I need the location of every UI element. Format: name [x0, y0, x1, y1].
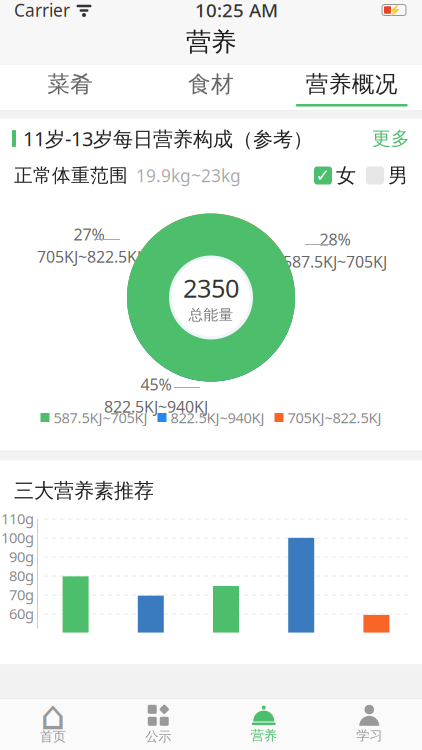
staticText: ⌂ — [40, 693, 65, 738]
staticText: 10:25 AM — [195, 0, 278, 22]
staticText: 80g — [9, 566, 34, 585]
staticText: 男 — [388, 163, 408, 188]
staticText: 19.9kg~23kg — [136, 164, 241, 187]
button[interactable]: 食材 — [141, 64, 281, 110]
staticText: Carrier — [14, 0, 70, 21]
staticText: 食材 — [188, 70, 234, 98]
button[interactable]: 学习 — [316, 698, 422, 750]
staticText: 28% — [319, 229, 350, 250]
button[interactable]: 更多 — [372, 127, 410, 150]
button[interactable]: 男 — [356, 163, 408, 188]
staticText: 营养 — [186, 26, 236, 57]
button[interactable]: 营养概况 — [281, 64, 422, 110]
staticText: 822.5KJ~940KJ — [104, 396, 208, 417]
staticText: 110g — [1, 509, 34, 528]
staticText: 45% — [140, 374, 171, 395]
staticText: 更多 — [372, 127, 410, 150]
staticText: 705KJ~822.5KJ — [37, 246, 141, 267]
button[interactable]: 公示 — [105, 698, 211, 750]
staticText: 公示 — [145, 728, 171, 745]
staticText: 70g — [9, 585, 34, 604]
staticText: 女 — [336, 163, 356, 188]
staticText: 705KJ~822.5KJ — [287, 408, 381, 427]
staticText: 11岁-13岁每日营养构成（参考） — [23, 125, 313, 152]
staticText: 三大营养素推荐 — [14, 478, 154, 503]
staticText: 587.5KJ~705KJ — [53, 408, 147, 427]
staticText: 学习 — [356, 727, 382, 744]
button[interactable]: ⌂ — [0, 698, 105, 750]
staticText: 总能量 — [188, 306, 233, 324]
staticText: 菜肴 — [47, 70, 93, 98]
staticText: 90g — [9, 547, 34, 566]
staticText: ⚡ — [387, 4, 400, 16]
staticText: 27% — [73, 224, 104, 245]
button[interactable]: 营养 — [211, 698, 316, 750]
staticText: 2350 — [183, 271, 239, 305]
staticText: 首页 — [40, 728, 66, 745]
staticText: ✓ — [315, 166, 330, 185]
button[interactable]: 菜肴 — [0, 64, 141, 110]
staticText: 822.5KJ~940KJ — [170, 408, 264, 427]
staticText: 营养概况 — [306, 70, 398, 98]
staticText: 60g — [9, 604, 34, 623]
staticText: 正常体重范围 — [14, 164, 128, 187]
staticText: 100g — [1, 528, 34, 547]
staticText: 587.5KJ~705KJ — [283, 251, 387, 272]
button[interactable]: ✓ — [314, 163, 356, 188]
staticText: 营养 — [251, 727, 277, 744]
